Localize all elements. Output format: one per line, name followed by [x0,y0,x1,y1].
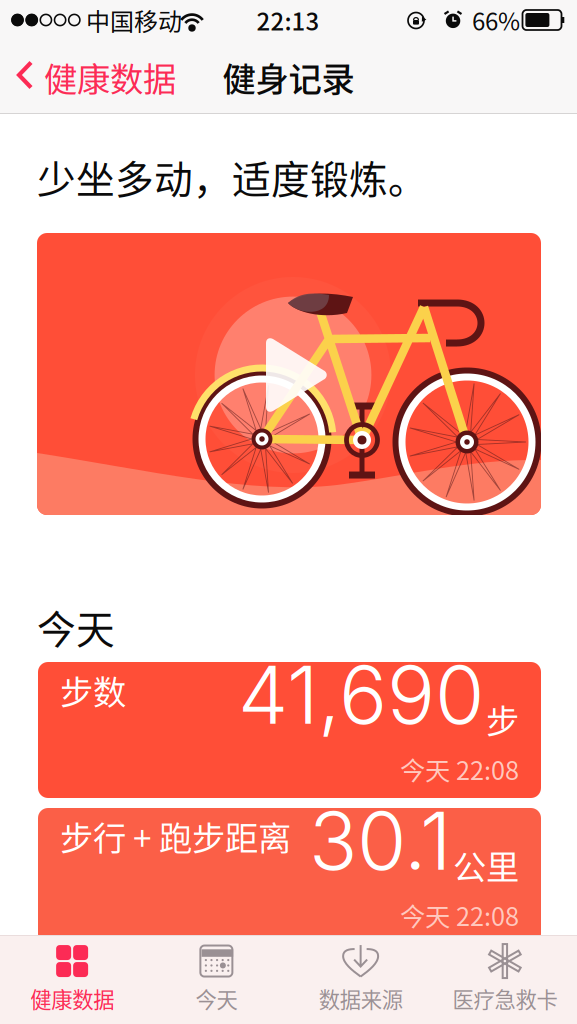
staticText: 数据来源 [319,983,403,1014]
button[interactable]: 今天 [144,935,288,1024]
button[interactable]: 播放健身视频 [37,233,541,515]
staticText: 今天 22:08 [400,897,519,933]
staticText: 今天 [37,599,115,655]
button[interactable]: 步数 [38,662,541,798]
staticText: 41,690 [238,646,484,743]
button[interactable]: 步行 + 跑步距离 [38,808,541,944]
staticText: 健身记录 [222,53,354,101]
staticText: 步数 [60,666,126,714]
staticText: 步 [486,695,519,743]
button[interactable]: 健康数据 [0,40,182,114]
staticText: 医疗急救卡 [452,983,557,1014]
staticText: 健康数据 [44,53,176,101]
button[interactable]: 健康数据 [0,935,144,1024]
staticText: 少坐多动，适度锻炼。 [37,149,427,205]
staticText: 30.1 [309,792,451,889]
staticText: 今天 [195,983,237,1014]
button[interactable]: 医疗急救卡 [433,935,577,1024]
button[interactable]: 数据来源 [288,935,433,1024]
staticText: 22:13 [256,3,319,37]
staticText: 健康数据 [30,983,114,1014]
staticText: 中国移动 [86,3,182,37]
staticText: 步行 + 跑步距离 [60,812,291,860]
staticText: 66% [472,3,520,37]
staticText: 今天 22:08 [400,751,519,787]
staticText: 公里 [453,841,519,889]
